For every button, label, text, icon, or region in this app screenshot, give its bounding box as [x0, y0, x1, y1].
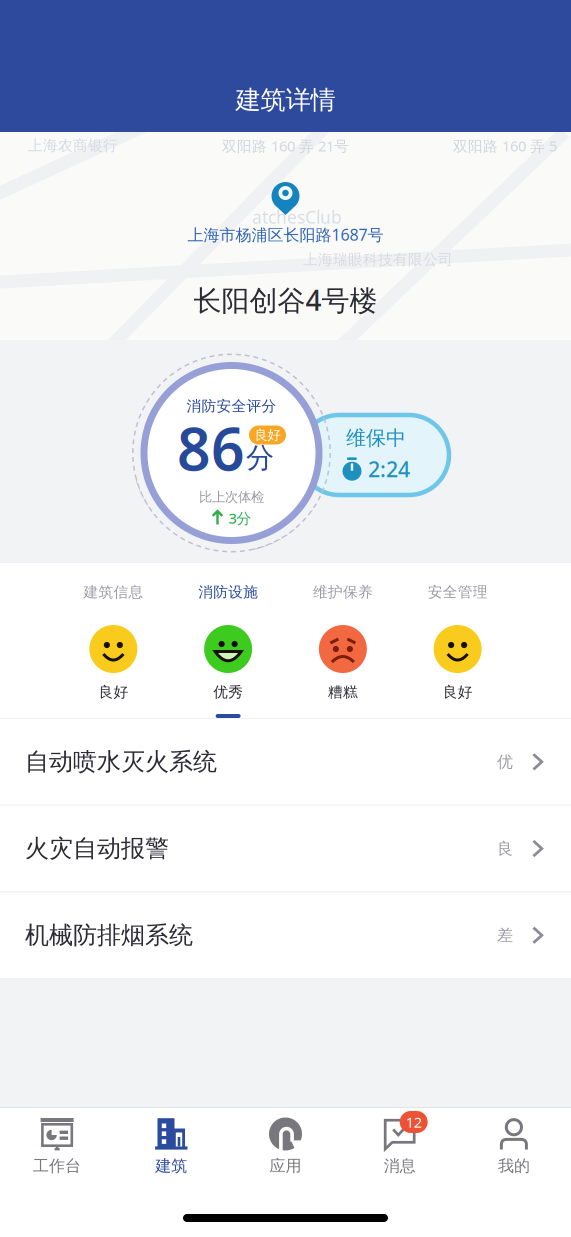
staticText: 建筑详情 — [235, 84, 335, 115]
staticText: 糟糕 — [328, 683, 358, 701]
staticText: 优秀 — [213, 683, 243, 701]
staticText: 自动喷水灭火系统 — [25, 747, 217, 777]
button[interactable]: 机械防排烟系统 — [0, 892, 571, 978]
staticText: 消防设施 — [198, 583, 258, 601]
staticText: 建筑 — [155, 1156, 187, 1176]
button[interactable]: 火灾自动报警 — [0, 806, 571, 891]
staticText: 良 — [497, 839, 513, 858]
staticText: 双阳路 160 弄 5 — [453, 136, 557, 155]
staticText: 上海瑞眼科技有限公司 — [303, 250, 453, 268]
staticText: 上海市杨浦区长阳路1687号 — [187, 224, 383, 245]
staticText: 火灾自动报警 — [25, 834, 169, 863]
staticText: 差 — [497, 925, 513, 945]
staticText: atchesClub — [252, 205, 342, 228]
staticText: 良好 — [443, 683, 473, 701]
staticText: 消防安全评分 — [186, 397, 276, 415]
button[interactable]: 应用 — [228, 1101, 343, 1209]
staticText: 机械防排烟系统 — [25, 920, 193, 950]
staticText: 维护保养 — [313, 583, 373, 601]
staticText: 应用 — [269, 1156, 301, 1176]
staticText: 双阳路 160 弄 21号 — [222, 136, 349, 155]
staticText: 建筑信息 — [83, 583, 143, 601]
button[interactable]: 建筑 — [114, 1101, 228, 1209]
button[interactable]: 安全管理 — [400, 563, 515, 718]
button[interactable]: 工作台 — [0, 1101, 114, 1209]
staticText: 长阳创谷4号楼 — [193, 281, 377, 318]
staticText: 良好 — [254, 427, 280, 443]
staticText: 消息 — [384, 1156, 416, 1176]
button[interactable]: 建筑信息 — [56, 563, 171, 718]
staticText: 分 — [246, 441, 274, 475]
staticText: 比上次体检 — [199, 489, 264, 505]
staticText: 安全管理 — [428, 583, 488, 601]
staticText: 良好 — [98, 683, 128, 701]
staticText: 我的 — [498, 1156, 530, 1176]
staticText: 工作台 — [33, 1156, 81, 1176]
staticText: 2:24 — [368, 455, 410, 483]
staticText: 优 — [497, 752, 513, 772]
staticText: 86 — [177, 409, 245, 487]
button[interactable]: 我的 — [457, 1101, 571, 1209]
button[interactable]: 维护保养 — [285, 563, 400, 718]
button[interactable]: 消防设施 — [171, 563, 286, 718]
staticText: 12 — [406, 1112, 422, 1132]
staticText: 3分 — [228, 508, 251, 528]
staticText: 维保中 — [346, 426, 406, 450]
staticText: 上海农商银行 — [28, 137, 118, 155]
button[interactable]: 自动喷水灭火系统 — [0, 719, 571, 805]
button[interactable]: 12 — [343, 1101, 457, 1209]
